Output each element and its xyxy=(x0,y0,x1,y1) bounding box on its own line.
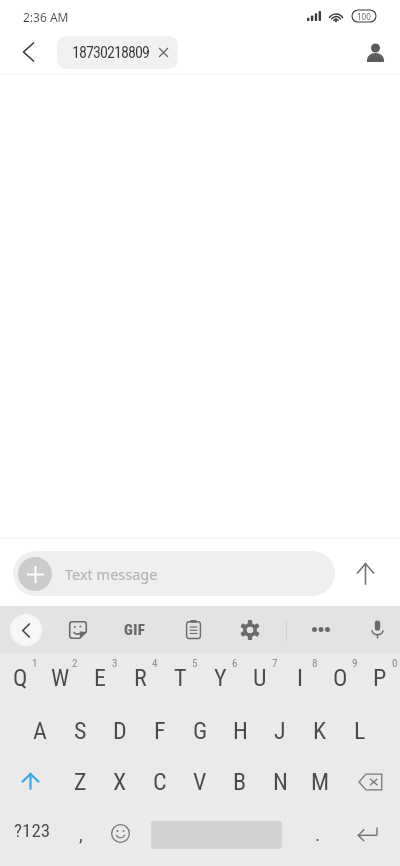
button[interactable]: I xyxy=(280,653,320,705)
staticText: Y xyxy=(214,664,227,692)
button[interactable]: E xyxy=(80,653,120,705)
button[interactable]: Shift xyxy=(0,756,60,807)
button[interactable]: F xyxy=(140,705,180,756)
staticText: 4 xyxy=(152,657,158,670)
staticText: U xyxy=(253,664,267,692)
staticText: I xyxy=(297,664,303,692)
button[interactable]: W xyxy=(40,653,80,705)
staticText: 6 xyxy=(232,657,238,670)
staticText: 5 xyxy=(192,657,198,670)
button[interactable]: Emoji xyxy=(86,813,154,853)
button[interactable]: Settings xyxy=(229,606,271,653)
button[interactable]: Stickers xyxy=(57,606,99,653)
staticText: F xyxy=(154,717,166,745)
staticText: Z xyxy=(74,768,87,796)
staticText: 1 xyxy=(32,657,38,670)
staticText: G xyxy=(193,717,208,745)
staticText: A xyxy=(33,717,47,745)
button[interactable]: Voice input xyxy=(356,606,398,653)
staticText: 2:36 AM xyxy=(23,9,69,25)
staticText: B xyxy=(233,768,247,796)
button[interactable]: Q xyxy=(0,653,40,705)
staticText: R xyxy=(134,664,147,692)
staticText: W xyxy=(51,664,70,692)
button[interactable]: Text message xyxy=(13,551,335,596)
button[interactable]: T xyxy=(160,653,200,705)
button[interactable]: B xyxy=(220,756,260,807)
button[interactable]: Clipboard xyxy=(172,606,214,653)
button[interactable]: Back xyxy=(10,34,46,70)
button[interactable]: G xyxy=(180,705,220,756)
button[interactable]: A xyxy=(20,705,60,756)
button[interactable]: J xyxy=(260,705,300,756)
button[interactable]: Enter xyxy=(333,813,400,853)
staticText: 2 xyxy=(72,657,78,670)
button[interactable]: , xyxy=(47,813,115,853)
staticText: V xyxy=(193,768,207,796)
button[interactable]: P xyxy=(360,653,400,705)
button[interactable]: 18730218809 xyxy=(57,36,178,69)
button[interactable]: Close toolbar xyxy=(5,606,47,653)
button[interactable]: X xyxy=(100,756,140,807)
staticText: Q xyxy=(13,664,28,692)
staticText: S xyxy=(74,717,87,745)
staticText: GIF xyxy=(124,621,146,639)
button[interactable]: S xyxy=(60,705,100,756)
staticText: K xyxy=(313,717,327,745)
staticText: 3 xyxy=(112,657,118,670)
button[interactable]: GIF xyxy=(114,606,156,653)
button[interactable]: L xyxy=(340,705,380,756)
button[interactable]: O xyxy=(320,653,360,705)
button[interactable]: . xyxy=(284,813,352,853)
staticText: 8 xyxy=(312,657,318,670)
staticText: 0 xyxy=(392,657,398,670)
staticText: M xyxy=(311,768,330,796)
button[interactable]: V xyxy=(180,756,220,807)
staticText: O xyxy=(333,664,348,692)
button[interactable]: Space xyxy=(147,813,286,853)
button[interactable]: C xyxy=(140,756,180,807)
staticText: 9 xyxy=(352,657,358,670)
staticText: X xyxy=(113,768,127,796)
staticText: L xyxy=(354,717,366,745)
button[interactable]: Send xyxy=(345,553,386,594)
staticText: N xyxy=(273,768,288,796)
staticText: D xyxy=(113,717,127,745)
button[interactable]: K xyxy=(300,705,340,756)
staticText: P xyxy=(373,664,387,692)
staticText: 7 xyxy=(272,657,278,670)
staticText: C xyxy=(153,768,167,796)
staticText: H xyxy=(233,717,248,745)
staticText: ?123 xyxy=(14,819,51,841)
button[interactable]: Backspace xyxy=(340,756,400,807)
button[interactable]: N xyxy=(260,756,300,807)
button[interactable]: Z xyxy=(60,756,100,807)
staticText: E xyxy=(94,664,106,692)
button[interactable]: D xyxy=(100,705,140,756)
button[interactable]: R xyxy=(120,653,160,705)
button[interactable]: Contact details xyxy=(357,34,393,70)
staticText: 100 xyxy=(357,11,371,22)
staticText: Text message xyxy=(65,564,158,584)
button[interactable]: ?123 xyxy=(0,813,66,853)
staticText: 18730218809 xyxy=(72,43,149,62)
button[interactable]: More options xyxy=(300,606,342,653)
button[interactable]: Y xyxy=(200,653,240,705)
button[interactable]: U xyxy=(240,653,280,705)
button[interactable]: H xyxy=(220,705,260,756)
staticText: , xyxy=(79,823,83,845)
staticText: T xyxy=(174,664,187,692)
staticText: . xyxy=(315,823,321,845)
button[interactable]: M xyxy=(300,756,340,807)
staticText: J xyxy=(274,717,286,745)
